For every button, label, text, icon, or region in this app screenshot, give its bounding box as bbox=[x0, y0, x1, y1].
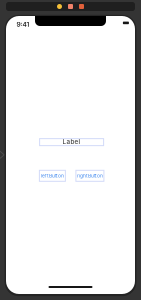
button[interactable]: rightButton bbox=[76, 170, 104, 181]
staticText: rightButton bbox=[77, 173, 103, 179]
staticText: 9:41 bbox=[16, 20, 29, 28]
button[interactable]: Stop bbox=[68, 4, 73, 9]
staticText: Label bbox=[63, 138, 81, 145]
button[interactable]: Expand canvas bbox=[0, 150, 5, 160]
button[interactable]: leftButton bbox=[39, 170, 65, 181]
button[interactable]: Run bbox=[79, 4, 84, 9]
button[interactable]: Minimize window bbox=[57, 4, 62, 9]
staticText: leftButton bbox=[41, 173, 64, 179]
